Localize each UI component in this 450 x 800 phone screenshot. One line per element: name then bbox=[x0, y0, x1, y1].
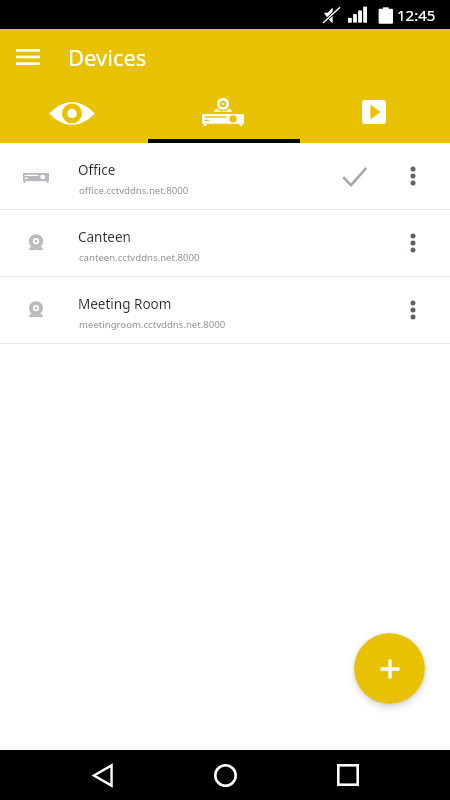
button[interactable]: Live view bbox=[0, 85, 150, 143]
button[interactable]: Menu bbox=[4, 33, 52, 81]
button[interactable]: Home bbox=[202, 752, 248, 798]
button[interactable]: Add device bbox=[354, 633, 425, 704]
button[interactable]: Canteen bbox=[0, 210, 450, 276]
button[interactable]: Selected bbox=[332, 154, 376, 198]
staticText: Canteen bbox=[78, 228, 131, 246]
staticText: canteen.cctvddns.net.8000 bbox=[79, 251, 200, 264]
button[interactable]: More options bbox=[376, 277, 450, 343]
staticText: Meeting Room bbox=[78, 295, 172, 313]
button[interactable]: Playback bbox=[300, 85, 450, 143]
button[interactable]: Back bbox=[79, 752, 125, 798]
button[interactable]: Office bbox=[0, 143, 450, 209]
staticText: office.cctvddns.net.8000 bbox=[79, 184, 189, 197]
button[interactable]: More options bbox=[376, 143, 450, 209]
staticText: 12:45 bbox=[397, 5, 436, 25]
staticText: Devices bbox=[68, 42, 147, 72]
staticText: Office bbox=[78, 161, 116, 179]
staticText: meetingroom.cctvddns.net.8000 bbox=[79, 318, 226, 331]
button[interactable]: More options bbox=[376, 210, 450, 276]
button[interactable]: Meeting Room bbox=[0, 277, 450, 343]
button[interactable]: Devices bbox=[150, 85, 300, 143]
button[interactable]: Recents bbox=[325, 752, 371, 798]
